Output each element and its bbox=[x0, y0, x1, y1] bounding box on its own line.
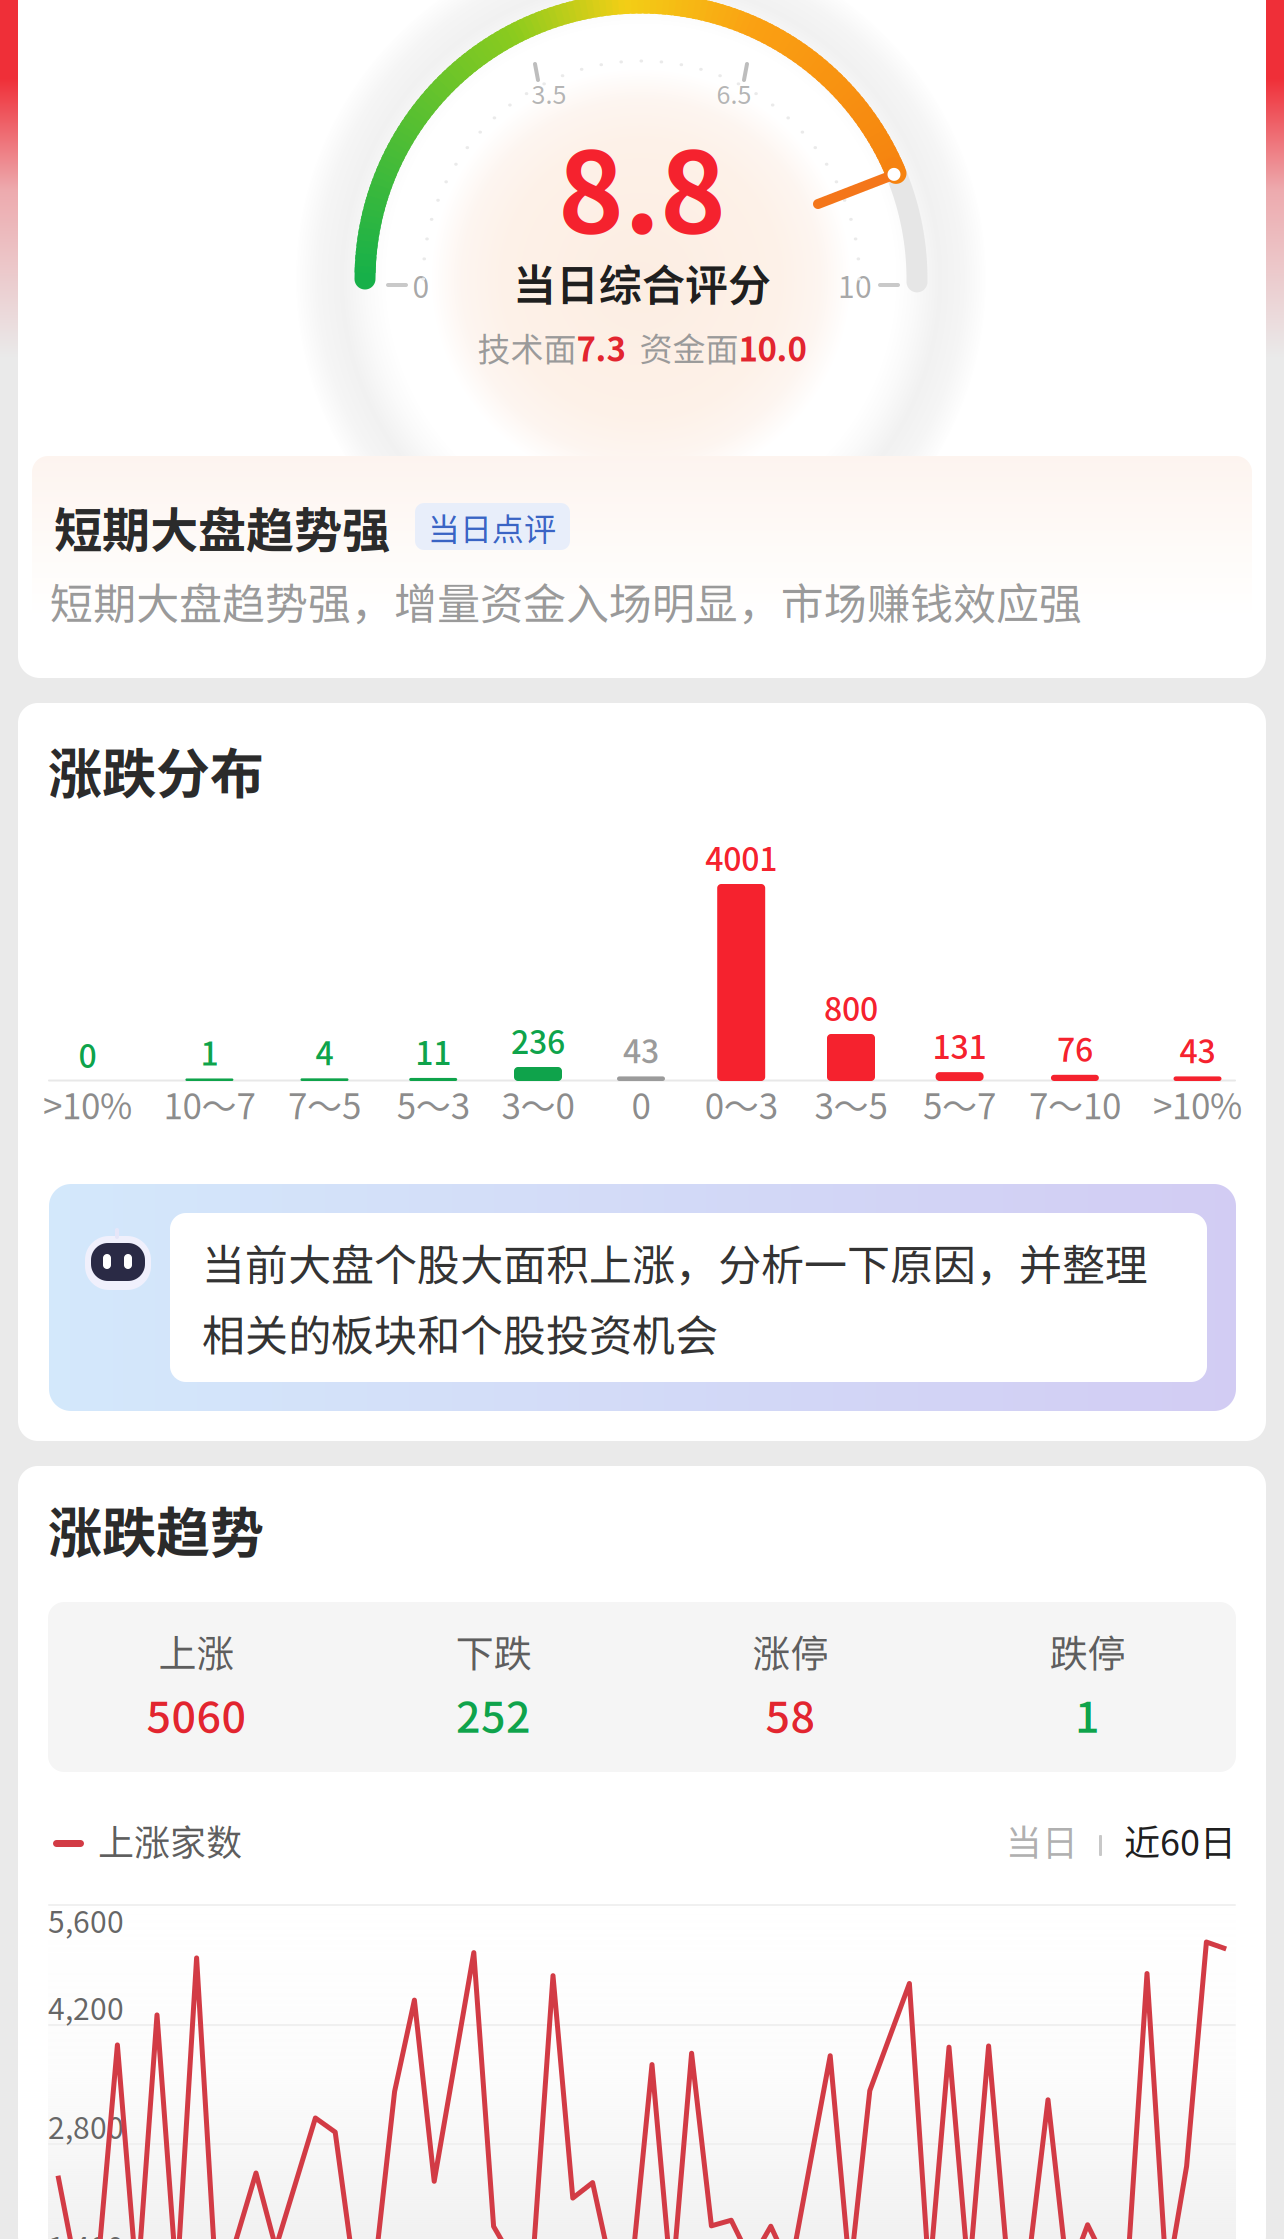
staticText: 5,600 bbox=[48, 1898, 124, 1942]
staticText: 跌停 bbox=[1049, 1623, 1125, 1678]
staticText: 236 bbox=[511, 1017, 565, 1063]
staticText: 相关的板块和个股投资机会 bbox=[202, 1301, 718, 1364]
staticText: 4 bbox=[315, 1028, 333, 1074]
staticText: 上涨家数 bbox=[98, 1814, 242, 1866]
staticText: 5060 bbox=[146, 1683, 246, 1745]
staticText: 近60日 bbox=[1124, 1814, 1236, 1866]
staticText: 0～3 bbox=[705, 1079, 778, 1129]
staticText: 0 bbox=[78, 1031, 96, 1077]
staticText: 1,400 bbox=[48, 2224, 124, 2239]
staticText: 涨跌分布 bbox=[48, 731, 264, 809]
staticText: 3～0 bbox=[501, 1079, 574, 1129]
staticText: 0 bbox=[412, 263, 429, 307]
staticText: 短期大盘趋势强 bbox=[54, 492, 390, 562]
staticText: 1 bbox=[200, 1028, 218, 1075]
staticText: 0 bbox=[631, 1079, 650, 1129]
staticText: 资金面 bbox=[639, 323, 738, 371]
staticText: 76 bbox=[1057, 1025, 1093, 1071]
staticText: 10～7 bbox=[163, 1079, 255, 1129]
staticText: 短期大盘趋势强，增量资金入场明显，市场赚钱效应强 bbox=[50, 570, 1082, 632]
staticText: 10.0 bbox=[738, 323, 806, 371]
staticText: 8.8 bbox=[558, 103, 726, 265]
staticText: 当日综合评分 bbox=[513, 251, 771, 313]
staticText: >10% bbox=[1153, 1079, 1242, 1129]
staticText: 800 bbox=[824, 984, 878, 1030]
button[interactable]: 当日 bbox=[978, 1808, 1078, 1872]
staticText: 当前大盘个股大面积上涨，分析一下原因，并整理 bbox=[202, 1231, 1148, 1293]
staticText: 涨停 bbox=[752, 1623, 828, 1678]
staticText: 3～5 bbox=[814, 1079, 887, 1129]
staticText: 当日 bbox=[1006, 1814, 1078, 1866]
staticText: >10% bbox=[43, 1079, 132, 1129]
staticText: 涨跌趋势 bbox=[48, 1490, 264, 1568]
staticText: 4001 bbox=[705, 834, 777, 880]
staticText: 上涨 bbox=[158, 1623, 234, 1678]
staticText: 5～7 bbox=[923, 1079, 996, 1129]
staticText: 3.5 bbox=[531, 75, 566, 111]
staticText: 252 bbox=[456, 1683, 531, 1745]
staticText: 131 bbox=[933, 1022, 987, 1068]
staticText: 7.3 bbox=[576, 323, 625, 371]
button[interactable]: 当前大盘个股大面积上涨，分析一下原因，并整理 bbox=[49, 1184, 1236, 1411]
staticText: 6.5 bbox=[716, 75, 751, 111]
staticText: 4,200 bbox=[48, 1985, 124, 2029]
staticText: 技术面 bbox=[477, 323, 576, 371]
staticText: 2,800 bbox=[48, 2104, 124, 2148]
staticText: 下跌 bbox=[455, 1623, 531, 1678]
staticText: 1 bbox=[1075, 1683, 1100, 1745]
staticText: 43 bbox=[623, 1026, 659, 1072]
staticText: 7～5 bbox=[288, 1079, 361, 1129]
staticText: 5～3 bbox=[397, 1079, 470, 1129]
staticText: 11 bbox=[415, 1028, 451, 1074]
staticText: 7～10 bbox=[1029, 1079, 1121, 1129]
staticText: 43 bbox=[1179, 1026, 1215, 1072]
staticText: 10 bbox=[838, 263, 872, 307]
staticText: 58 bbox=[765, 1683, 815, 1745]
staticText: 当日点评 bbox=[428, 504, 556, 550]
button[interactable]: 近60日 bbox=[1116, 1808, 1236, 1872]
